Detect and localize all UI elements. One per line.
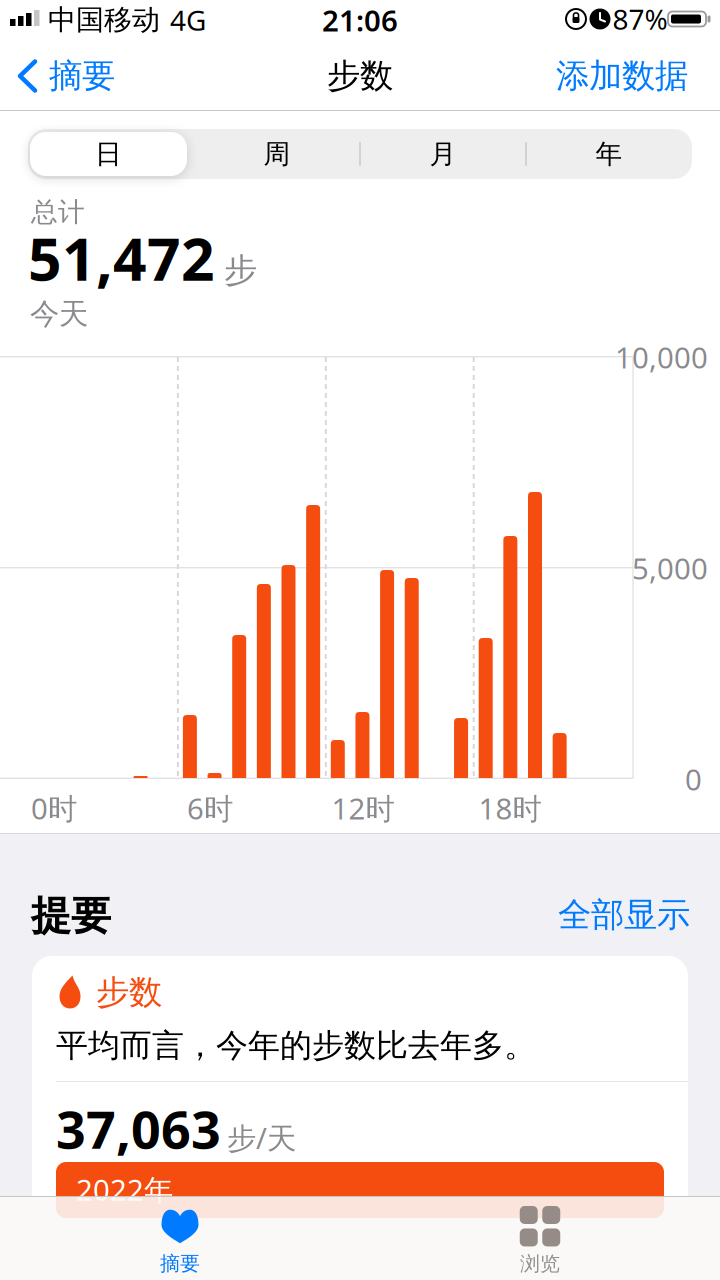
staticText: 步数: [327, 55, 393, 96]
staticText: 步数: [96, 972, 162, 1013]
staticText: 2022年: [76, 1170, 173, 1209]
button[interactable]: 周: [197, 132, 357, 176]
staticText: 18时: [478, 788, 541, 827]
staticText: 4G: [170, 1, 206, 39]
staticText: 21:06: [322, 0, 398, 39]
staticText: 年: [595, 138, 622, 170]
staticText: 5,000: [632, 548, 708, 587]
staticText: 今天: [30, 296, 88, 332]
staticText: 提要: [31, 891, 111, 940]
button[interactable]: 全部显示: [430, 885, 690, 945]
staticText: 摘要: [49, 55, 115, 96]
staticText: 总计: [31, 196, 85, 228]
staticText: 摘要: [160, 1251, 200, 1276]
staticText: 0: [685, 759, 702, 798]
staticText: 日: [95, 138, 122, 170]
staticText: 37,063: [56, 1094, 221, 1163]
staticText: 10,000: [615, 337, 708, 376]
staticText: 6时: [187, 788, 233, 827]
button[interactable]: 摘要: [17, 55, 115, 96]
button[interactable]: 年: [529, 132, 689, 176]
button[interactable]: 浏览: [520, 1206, 560, 1276]
staticText: 周: [263, 138, 290, 170]
staticText: 全部显示: [558, 894, 690, 935]
staticText: 月: [429, 138, 456, 170]
staticText: 步/天: [227, 1118, 296, 1157]
button[interactable]: 月: [363, 132, 523, 176]
staticText: 12时: [331, 788, 394, 827]
staticText: 浏览: [520, 1251, 560, 1276]
staticText: 51,472: [28, 219, 215, 297]
staticText: 0时: [31, 788, 77, 827]
button[interactable]: 添加数据: [428, 46, 688, 106]
staticText: 平均而言，今年的步数比去年多。: [56, 1026, 536, 1065]
staticText: 步: [224, 250, 257, 291]
button[interactable]: 日: [30, 132, 187, 176]
button[interactable]: 摘要: [159, 1206, 201, 1276]
staticText: 添加数据: [556, 55, 688, 96]
button[interactable]: 步数: [32, 956, 688, 1240]
staticText: 中国移动: [48, 3, 160, 37]
staticText: 87%: [612, 0, 667, 38]
